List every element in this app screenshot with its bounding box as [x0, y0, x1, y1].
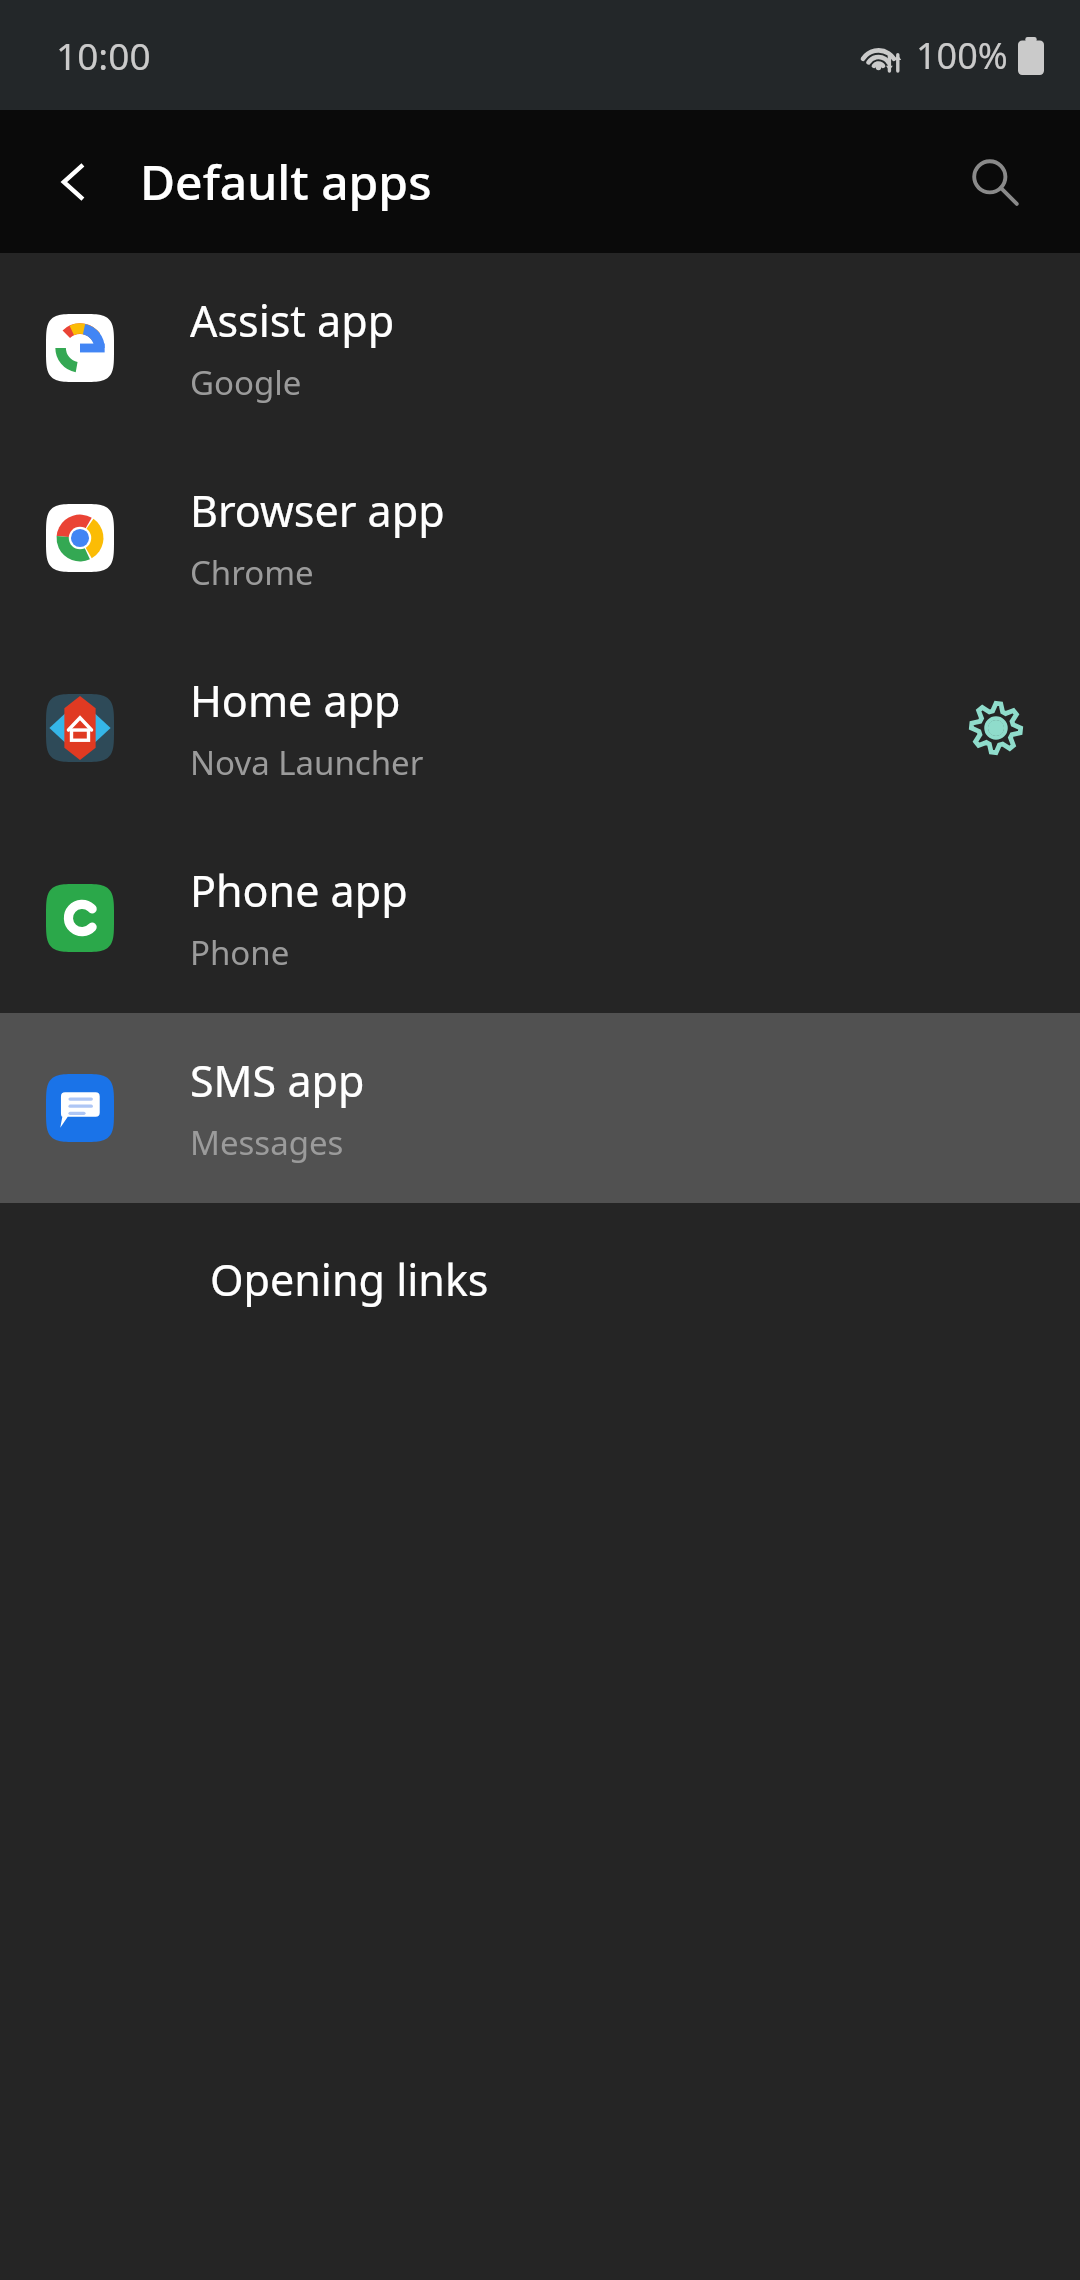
button[interactable]: Search	[946, 133, 1044, 231]
button[interactable]: Home app settings	[948, 680, 1044, 776]
staticText: 100%	[916, 31, 1008, 80]
staticText: Default apps	[140, 149, 432, 214]
staticText: Messages	[190, 1120, 344, 1165]
button[interactable]: Browser app	[0, 443, 1080, 633]
staticText: Nova Launcher	[190, 740, 424, 785]
button[interactable]: Opening links	[0, 1203, 1080, 1355]
staticText: Home app	[190, 671, 401, 730]
button[interactable]: Phone app	[0, 823, 1080, 1013]
staticText: Opening links	[210, 1250, 489, 1309]
staticText: 10:00	[56, 30, 151, 80]
staticText: SMS app	[190, 1051, 365, 1110]
button[interactable]: Assist app	[0, 253, 1080, 443]
staticText: Phone app	[190, 861, 408, 920]
button[interactable]: SMS app	[0, 1013, 1080, 1203]
staticText: Google	[190, 360, 302, 405]
staticText: Chrome	[190, 550, 314, 595]
button[interactable]: Home app	[0, 633, 1080, 823]
staticText: Assist app	[190, 291, 395, 350]
staticText: Phone	[190, 930, 290, 975]
button[interactable]: Back	[24, 133, 122, 231]
staticText: Browser app	[190, 481, 445, 540]
